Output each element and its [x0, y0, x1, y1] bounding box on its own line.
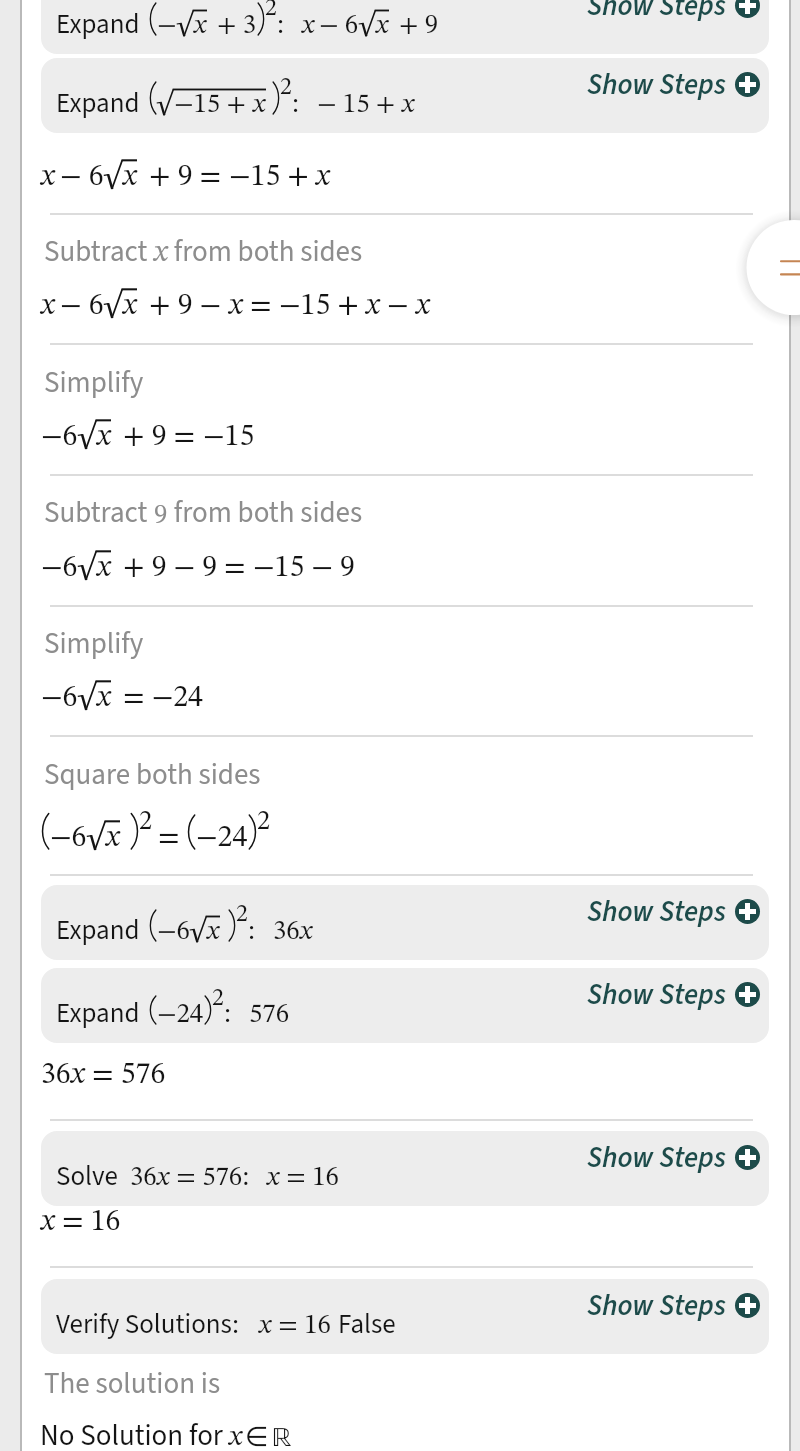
staticText: x: [123, 291, 137, 321]
staticText: =: [158, 823, 187, 853]
staticText: −: [380, 291, 416, 321]
staticText: :: [232, 1312, 239, 1339]
staticText: x: [267, 1164, 280, 1191]
staticText: 36: [130, 1164, 157, 1191]
staticText: + 3: [217, 12, 257, 39]
staticText: − 15 +: [317, 91, 402, 118]
staticText: Expand: [56, 911, 140, 949]
staticText: The solution is: [44, 1363, 221, 1404]
staticText: x: [229, 291, 243, 321]
staticText: x: [316, 162, 330, 192]
staticText: −6: [41, 422, 78, 452]
button[interactable]: Expand: [41, 968, 769, 1043]
staticText: Subtract: [44, 231, 154, 272]
staticText: − 6: [319, 12, 359, 39]
button[interactable]: Expand: [41, 885, 769, 960]
button[interactable]: Show keypad: [730, 203, 800, 331]
staticText: 576: [249, 1001, 290, 1028]
staticText: −15: [203, 422, 255, 452]
staticText: x: [71, 1060, 85, 1090]
staticText: −6: [41, 683, 78, 713]
staticText: 36: [273, 918, 300, 945]
staticText: x: [97, 553, 111, 583]
staticText: 2: [265, 0, 277, 21]
staticText: x: [123, 162, 137, 192]
staticText: − 6: [60, 291, 104, 321]
staticText: :: [224, 1001, 231, 1028]
staticText: 36: [41, 1060, 71, 1090]
staticText: + 9 −: [149, 291, 229, 321]
staticText: x: [154, 238, 168, 268]
staticText: −6: [41, 553, 78, 583]
staticText: 2: [212, 987, 224, 1011]
staticText: −6: [157, 918, 190, 945]
staticText: −15 − 9: [253, 553, 355, 583]
staticText: Show Steps: [587, 1285, 726, 1326]
staticText: Expand: [56, 994, 140, 1032]
staticText: + 9: [399, 12, 439, 39]
staticText: = 16: [272, 1312, 338, 1339]
staticText: x: [194, 12, 207, 39]
staticText: Subtract: [44, 492, 154, 533]
button[interactable]: Verify Solutions: [41, 1279, 769, 1354]
staticText: x: [97, 422, 111, 452]
staticText: x: [366, 291, 380, 321]
staticText: :: [292, 91, 299, 118]
staticText: No Solution for: [40, 1415, 229, 1451]
staticText: ℝ: [272, 1425, 292, 1451]
staticText: False: [338, 1305, 396, 1343]
staticText: x: [302, 12, 315, 39]
staticText: x: [41, 1207, 55, 1237]
staticText: −24: [157, 1001, 204, 1028]
staticText: Show Steps: [587, 0, 726, 26]
staticText: Show Steps: [587, 64, 726, 105]
staticText: Simplify: [44, 623, 144, 664]
staticText: x: [207, 918, 220, 945]
staticText: x: [41, 162, 55, 192]
staticText: 2: [257, 809, 271, 835]
staticText: Expand: [56, 5, 140, 43]
staticText: x: [300, 918, 313, 945]
staticText: + 9 =: [149, 162, 229, 192]
staticText: ∈: [245, 1421, 269, 1451]
staticText: = −24: [123, 683, 203, 713]
staticText: 2: [236, 903, 248, 927]
button[interactable]: Expand: [41, 58, 769, 133]
staticText: x: [106, 823, 120, 853]
staticText: + 9 =: [123, 422, 203, 452]
staticText: :: [277, 12, 284, 39]
staticText: = 16: [55, 1207, 121, 1237]
staticText: =: [243, 291, 279, 321]
staticText: + 9 − 9 =: [123, 553, 253, 583]
staticText: = 576:: [170, 1164, 249, 1191]
staticText: Show Steps: [587, 1137, 726, 1178]
staticText: −15 +: [279, 291, 366, 321]
staticText: x: [376, 12, 389, 39]
staticText: − 6: [60, 162, 104, 192]
staticText: from both sides: [168, 492, 363, 533]
staticText: Square both sides: [44, 754, 261, 795]
staticText: from both sides: [168, 231, 363, 272]
staticText: Verify Solutions: [56, 1305, 232, 1343]
staticText: x: [253, 91, 266, 118]
button[interactable]: Solve: [41, 1131, 769, 1206]
staticText: x: [41, 291, 55, 321]
staticText: 2: [139, 809, 153, 835]
staticText: Simplify: [44, 362, 144, 403]
staticText: 2: [280, 76, 292, 100]
staticText: x: [97, 683, 111, 713]
staticText: = 576: [85, 1060, 166, 1090]
staticText: −: [157, 12, 177, 39]
staticText: 9: [154, 502, 168, 529]
button[interactable]: Expand: [41, 0, 769, 54]
staticText: = 16: [280, 1164, 339, 1191]
staticText: :: [248, 918, 255, 945]
staticText: −15 +: [229, 162, 316, 192]
staticText: Show Steps: [587, 974, 726, 1015]
staticText: −24: [196, 823, 248, 853]
staticText: −6: [50, 823, 87, 853]
staticText: x: [416, 291, 430, 321]
staticText: −15 +: [174, 91, 253, 118]
staticText: x: [402, 91, 415, 118]
staticText: Show Steps: [587, 891, 726, 932]
